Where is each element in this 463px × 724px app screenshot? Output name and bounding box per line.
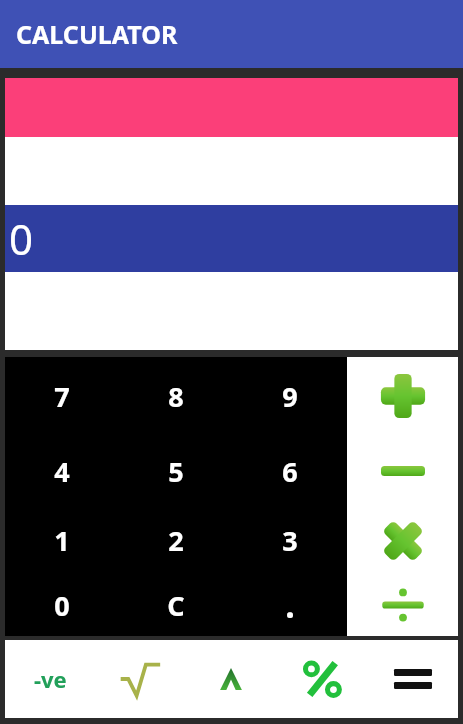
- button[interactable]: 0: [5, 574, 119, 636]
- button[interactable]: CALCULATOR: [0, 0, 463, 68]
- staticText: C: [167, 587, 185, 624]
- staticText: 3: [282, 522, 298, 559]
- button[interactable]: Equals: [367, 640, 458, 718]
- staticText: 4: [54, 453, 70, 490]
- staticText: 8: [168, 378, 184, 415]
- button[interactable]: 1: [5, 507, 119, 574]
- staticText: 9: [282, 378, 298, 415]
- button[interactable]: 4: [5, 435, 119, 507]
- staticText: -ve: [34, 664, 67, 694]
- button[interactable]: Square root: [95, 640, 185, 718]
- button[interactable]: Subtract: [347, 435, 458, 507]
- button[interactable]: Negate: [5, 640, 95, 718]
- button[interactable]: 8: [119, 357, 233, 435]
- button[interactable]: 3: [233, 507, 347, 574]
- staticText: 1: [54, 522, 70, 559]
- staticText: 5: [168, 453, 184, 490]
- staticText: 2: [168, 522, 184, 559]
- staticText: 6: [282, 453, 298, 490]
- button[interactable]: 6: [233, 435, 347, 507]
- staticText: CALCULATOR: [16, 17, 178, 51]
- staticText: 0: [9, 210, 34, 267]
- button[interactable]: .: [233, 574, 347, 636]
- button[interactable]: Percent: [276, 640, 367, 718]
- button[interactable]: Divide: [347, 574, 458, 636]
- button[interactable]: Power: [185, 640, 276, 718]
- staticText: .: [285, 582, 295, 628]
- staticText: 0: [54, 587, 70, 624]
- button[interactable]: 2: [119, 507, 233, 574]
- button[interactable]: 9: [233, 357, 347, 435]
- staticText: 7: [54, 378, 70, 415]
- button[interactable]: Add: [347, 357, 458, 435]
- button[interactable]: C: [119, 574, 233, 636]
- button[interactable]: Multiply: [347, 507, 458, 574]
- button[interactable]: 7: [5, 357, 119, 435]
- button[interactable]: 5: [119, 435, 233, 507]
